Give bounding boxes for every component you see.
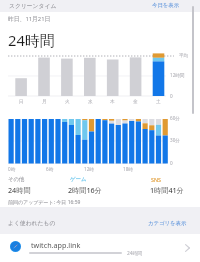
staticText: 12時間 <box>170 72 185 78</box>
staticText: 平均 <box>179 53 189 59</box>
staticText: 木 <box>110 99 115 105</box>
staticText: 今日を表示 <box>152 2 180 9</box>
staticText: 前回のアップデート: 今日 16:59 <box>8 199 81 206</box>
other: Details <box>185 244 190 252</box>
staticText: 1時間41分 <box>150 185 184 195</box>
staticText: 0時 <box>8 166 16 172</box>
button[interactable]: 今日を表示 <box>152 0 194 10</box>
staticText: よく使われたもの <box>8 219 56 226</box>
staticText: 月 <box>42 99 47 105</box>
staticText: 24時間 <box>127 250 143 257</box>
staticText: SNS <box>151 176 162 183</box>
staticText: 12時 <box>84 166 94 172</box>
staticText: 30分 <box>170 137 180 143</box>
staticText: 昨日、11月21日 <box>8 15 51 23</box>
staticText: スクリーンタイム <box>9 2 57 9</box>
staticText: 0 <box>170 160 173 166</box>
staticText: 火 <box>65 99 70 105</box>
staticText: その他 <box>8 176 25 183</box>
staticText: 24時間 <box>8 30 55 50</box>
staticText: カテゴリを表示 <box>148 220 187 227</box>
staticText: 24時間 <box>8 185 31 195</box>
staticText: 金 <box>133 99 138 105</box>
staticText: 6時 <box>46 166 54 172</box>
staticText: 18時 <box>123 166 133 172</box>
staticText: 土 <box>156 99 161 105</box>
staticText: twitch.app.link <box>31 240 81 250</box>
staticText: 日 <box>19 99 24 105</box>
button[interactable]: カテゴリを表示 <box>148 218 194 228</box>
staticText: ゲーム <box>70 176 87 183</box>
staticText: 水 <box>88 99 93 105</box>
staticText: 60分 <box>170 115 180 121</box>
button[interactable]: twitch.app.link <box>0 234 200 262</box>
staticText: 2時間16分 <box>68 185 102 195</box>
staticText: 0 <box>170 93 173 99</box>
